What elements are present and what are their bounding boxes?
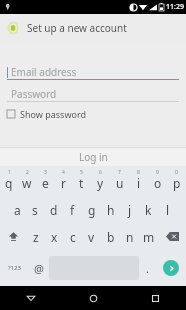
button[interactable]: j [120, 196, 139, 223]
button[interactable]: Home [62, 286, 124, 310]
staticText: 7 [118, 169, 121, 176]
button[interactable]: Back [0, 286, 62, 310]
staticText: Show password [20, 108, 86, 120]
staticText: ?123 [8, 264, 21, 272]
staticText: 3 [44, 169, 47, 176]
button[interactable]: b [101, 223, 120, 250]
button[interactable]: k [139, 196, 158, 223]
staticText: p [173, 175, 181, 191]
button[interactable]: 5 [72, 166, 91, 196]
button[interactable]: d [44, 196, 63, 223]
button[interactable]: a [8, 196, 26, 223]
staticText: 5 [80, 169, 83, 176]
button[interactable]: 1 [0, 166, 18, 196]
button[interactable]: z [27, 223, 45, 250]
staticText: Set up a new account [27, 21, 127, 35]
button[interactable]: f [63, 196, 82, 223]
staticText: 6 [99, 169, 102, 176]
button[interactable]: . [139, 250, 156, 286]
button[interactable]: v [82, 223, 101, 250]
staticText: t [79, 175, 84, 191]
staticText: s [32, 202, 38, 218]
staticText: v [88, 229, 95, 245]
button[interactable]: 7 [110, 166, 129, 196]
staticText: k [145, 202, 152, 218]
button[interactable]: l [158, 196, 177, 223]
button[interactable]: 3 [36, 166, 54, 196]
staticText: r [61, 175, 66, 191]
button[interactable]: 0 [167, 166, 186, 196]
staticText: g [88, 202, 96, 218]
button[interactable]: 8 [129, 166, 148, 196]
staticText: b [107, 229, 115, 245]
button[interactable]: 4 [54, 166, 72, 196]
staticText: m [143, 229, 155, 245]
staticText: f [70, 202, 75, 218]
button[interactable]: @ [28, 250, 49, 286]
button[interactable]: 9 [148, 166, 167, 196]
staticText: l [166, 202, 170, 218]
staticText: 11:29 [166, 2, 184, 12]
button[interactable]: g [82, 196, 101, 223]
button[interactable]: x [45, 223, 63, 250]
button[interactable]: n [120, 223, 139, 250]
staticText: j [128, 202, 132, 218]
button[interactable]: Show password [7, 107, 86, 121]
button[interactable]: ?123 [0, 250, 28, 286]
button[interactable]: s [26, 196, 44, 223]
staticText: e [42, 175, 49, 191]
button[interactable]: Log in [0, 148, 186, 166]
button[interactable]: c [63, 223, 82, 250]
staticText: Password [11, 87, 57, 101]
staticText: a [14, 202, 21, 218]
staticText: Log in [79, 150, 108, 164]
button[interactable]: Backspace [158, 223, 186, 250]
button[interactable]: 2 [18, 166, 36, 196]
staticText: z [33, 229, 39, 245]
staticText: Email address [11, 65, 77, 79]
staticText: h [107, 202, 115, 218]
staticText: 2 [26, 169, 29, 176]
staticText: n [126, 229, 134, 245]
button[interactable]: Shift [0, 223, 27, 250]
staticText: q [5, 175, 13, 191]
staticText: 9 [156, 169, 159, 176]
staticText: 4 [62, 169, 65, 176]
button[interactable]: Go [163, 260, 179, 276]
button[interactable]: Email address [7, 64, 179, 80]
staticText: 0 [175, 169, 178, 176]
staticText: @ [34, 261, 44, 276]
staticText: . [146, 261, 149, 276]
staticText: w [22, 175, 32, 191]
staticText: x [51, 229, 58, 245]
button[interactable]: Recents [124, 286, 186, 310]
staticText: 8 [137, 169, 140, 176]
button[interactable]: 6 [91, 166, 110, 196]
staticText: u [116, 175, 124, 191]
staticText: y [97, 175, 104, 191]
staticText: o [154, 175, 162, 191]
staticText: i [137, 175, 141, 191]
button[interactable]: h [101, 196, 120, 223]
staticText: 1 [8, 169, 11, 176]
staticText: d [50, 202, 58, 218]
button[interactable]: Password [7, 86, 179, 102]
staticText: c [70, 229, 76, 245]
button[interactable]: m [139, 223, 158, 250]
